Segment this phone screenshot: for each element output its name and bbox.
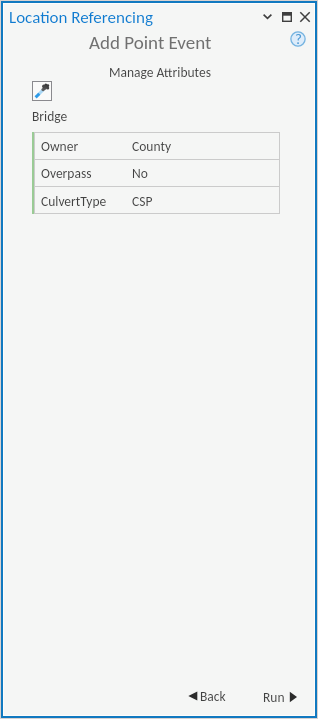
button[interactable]: Help — [288, 29, 308, 49]
button[interactable]: Run — [261, 687, 300, 707]
button[interactable]: Maximize panel — [278, 8, 295, 25]
staticText: Owner — [41, 138, 132, 154]
button[interactable]: Back — [184, 686, 228, 706]
button[interactable]: CulvertType — [34, 187, 280, 214]
staticText: CSP — [132, 193, 153, 209]
button[interactable]: Pick attributes from feature — [32, 81, 52, 101]
staticText: Back — [200, 688, 226, 704]
button[interactable]: Owner — [34, 132, 280, 159]
staticText: CulvertType — [41, 193, 132, 209]
staticText: Add Point Event — [89, 31, 212, 54]
staticText: Bridge — [32, 108, 68, 124]
staticText: County — [132, 138, 172, 154]
button[interactable]: Overpass — [34, 160, 280, 186]
staticText: Manage Attributes — [109, 64, 211, 80]
staticText: Overpass — [41, 165, 132, 181]
staticText: Run — [263, 689, 285, 705]
staticText: ? — [295, 30, 302, 48]
button[interactable]: Collapse panel — [259, 8, 276, 25]
staticText: No — [132, 165, 148, 181]
staticText: Location Referencing — [9, 7, 153, 28]
button[interactable]: Location Referencing — [9, 7, 153, 28]
button[interactable]: Close panel — [296, 8, 313, 25]
